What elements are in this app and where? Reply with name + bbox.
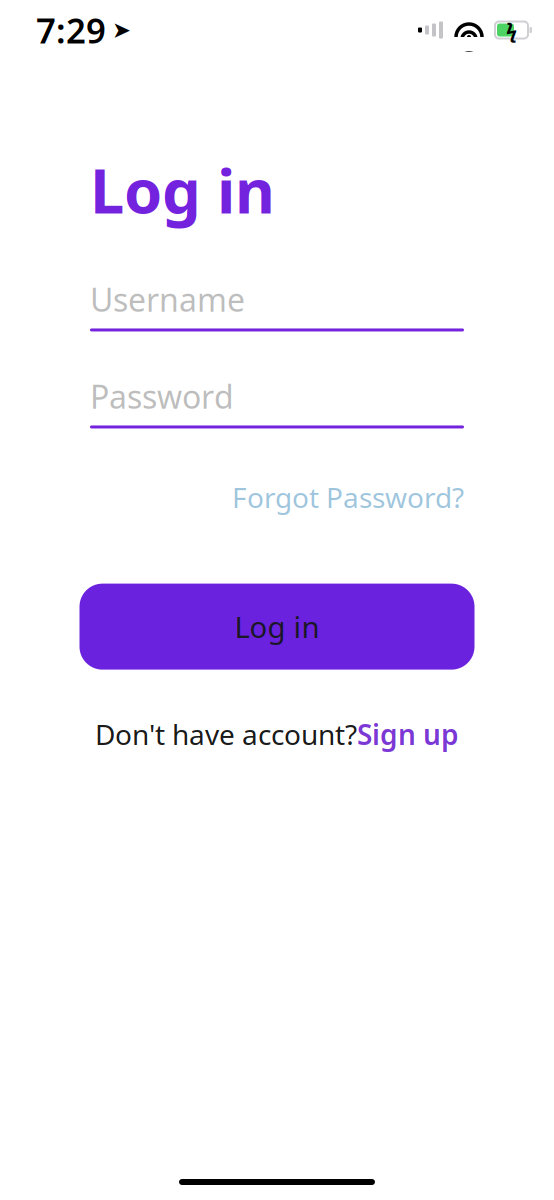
button[interactable]: Log in [79,584,474,670]
staticText: ϟ [506,17,517,43]
button[interactable]: Forgot Password? [232,478,464,516]
staticText: 7:29 [36,7,106,53]
staticText: Username [90,278,245,321]
staticText: Forgot Password? [232,478,464,516]
staticText: Password [90,375,234,418]
staticText: ➤ [112,17,131,43]
staticText: Log in [90,149,275,230]
staticText: Sign up [357,716,459,753]
button[interactable]: Sign up [357,716,459,753]
staticText: Log in [234,607,319,646]
staticText: Don't have account? [95,716,357,753]
